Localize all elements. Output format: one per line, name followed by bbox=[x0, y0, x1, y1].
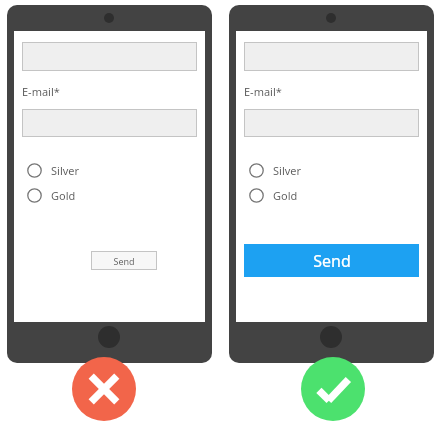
button[interactable]: Invalid bbox=[72, 357, 136, 421]
staticText: Silver bbox=[273, 163, 302, 178]
staticText: Gold bbox=[51, 188, 76, 203]
button[interactable]: Send bbox=[244, 244, 419, 277]
staticText: Silver bbox=[51, 163, 80, 178]
button[interactable] bbox=[244, 42, 419, 71]
staticText: Send bbox=[313, 250, 351, 272]
button[interactable]: Gold bbox=[27, 185, 76, 205]
button[interactable]: Silver bbox=[249, 160, 302, 180]
staticText: Send bbox=[113, 255, 135, 267]
button[interactable]: Send bbox=[91, 251, 157, 270]
button[interactable]: Gold bbox=[249, 185, 298, 205]
button[interactable] bbox=[244, 109, 419, 137]
staticText: E-mail* bbox=[244, 84, 282, 99]
button[interactable]: Silver bbox=[27, 160, 80, 180]
button[interactable]: Valid bbox=[301, 357, 365, 421]
staticText: E-mail* bbox=[22, 84, 60, 99]
button[interactable] bbox=[22, 109, 197, 137]
button[interactable] bbox=[22, 42, 197, 71]
staticText: Gold bbox=[273, 188, 298, 203]
